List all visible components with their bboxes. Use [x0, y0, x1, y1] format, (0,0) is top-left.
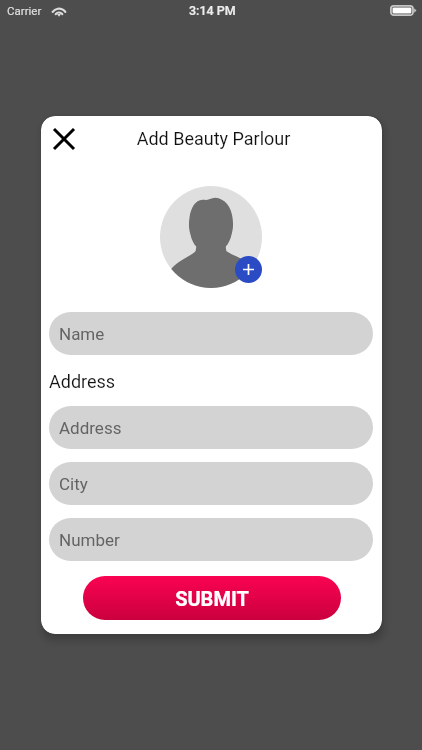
button[interactable]: Add photo — [235, 256, 262, 283]
staticText: SUBMIT — [175, 587, 249, 610]
staticText: Address — [59, 418, 122, 438]
staticText: City — [59, 474, 88, 494]
staticText: Add Beauty Parlour — [43, 128, 382, 149]
button[interactable]: City — [49, 462, 373, 505]
button[interactable]: SUBMIT — [83, 576, 341, 620]
button[interactable]: Number — [49, 518, 373, 561]
staticText: Name — [59, 324, 105, 344]
button[interactable]: Name — [49, 312, 373, 355]
staticText: Carrier — [7, 4, 42, 17]
staticText: Number — [59, 530, 120, 550]
button[interactable]: Address — [49, 406, 373, 449]
staticText: 3:14 PM — [189, 3, 236, 18]
button[interactable]: Close — [44, 119, 83, 158]
staticText: Address — [49, 371, 116, 392]
